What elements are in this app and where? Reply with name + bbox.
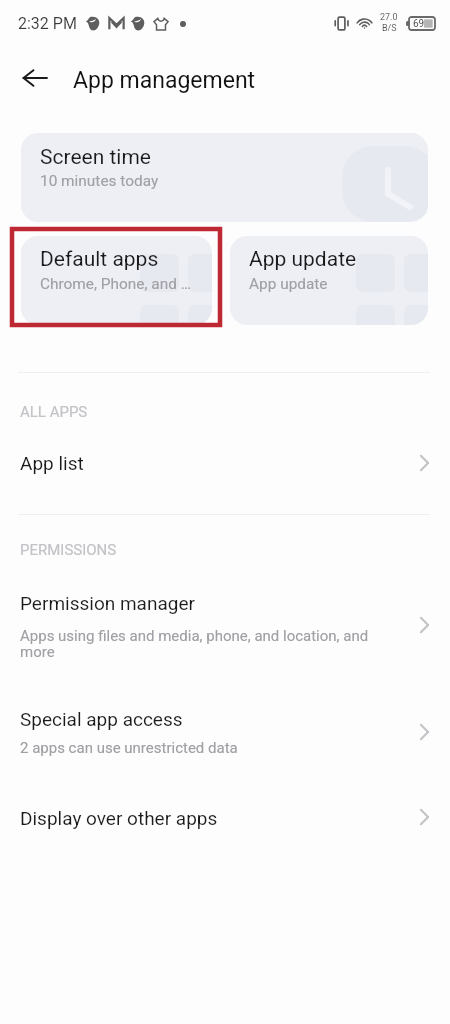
button[interactable]: App update [230,236,428,325]
staticText: App management [73,67,256,94]
button[interactable]: Screen time [21,133,428,222]
staticText: Default apps [40,247,159,272]
staticText: App update [249,247,357,272]
button[interactable]: Default apps [21,236,212,325]
staticText: 2:32 PM [18,14,77,33]
staticText: Special app access [20,708,183,730]
button[interactable]: Back [12,55,58,101]
button[interactable]: Permission manager [0,592,450,662]
staticText: App update [249,275,328,293]
staticText: 27.0 [380,12,398,23]
staticText: Apps using files and media, phone, and l… [20,627,390,661]
staticText: ALL APPS [20,403,88,421]
staticText: App list [20,452,84,474]
staticText: Screen time [40,145,151,170]
button[interactable]: Special app access [0,708,450,760]
staticText: Chrome, Phone, and … [40,275,191,293]
staticText: B/S [382,23,397,34]
button[interactable]: App list [0,452,450,482]
staticText: PERMISSIONS [20,541,117,559]
staticText: Permission manager [20,592,195,614]
staticText: 10 minutes today [40,172,159,190]
staticText: 2 apps can use unrestricted data [20,739,238,757]
button[interactable]: Display over other apps [0,807,450,837]
staticText: Display over other apps [20,807,218,829]
staticText: 69 [413,18,425,30]
